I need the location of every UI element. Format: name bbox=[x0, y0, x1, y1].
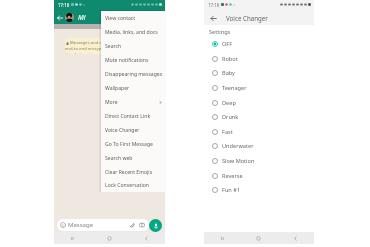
staticText: Reverse bbox=[222, 172, 243, 180]
staticText: Message bbox=[68, 221, 94, 229]
button[interactable]: Recent apps bbox=[204, 232, 240, 244]
button[interactable]: Reverse bbox=[204, 168, 314, 183]
button[interactable]: Home bbox=[240, 232, 277, 244]
staticText: Wallpaper bbox=[105, 85, 130, 92]
staticText: OFF bbox=[222, 40, 233, 48]
button[interactable]: Direct Contact Link bbox=[101, 109, 166, 123]
staticText: Direct Contact Link bbox=[105, 113, 151, 120]
staticText: 17:16 bbox=[208, 2, 220, 8]
button[interactable]: Drunk bbox=[204, 109, 314, 124]
staticText: Go To First Message bbox=[105, 141, 153, 148]
button[interactable]: Contact photo bbox=[65, 13, 74, 22]
staticText: 17:16 bbox=[58, 2, 70, 8]
button[interactable]: Wallpaper bbox=[101, 81, 166, 95]
staticText: Clear Recent Emojis bbox=[105, 169, 153, 176]
staticText: Deep bbox=[222, 99, 236, 107]
button[interactable]: View contact bbox=[101, 11, 166, 25]
button[interactable]: Disappearing messages bbox=[101, 67, 166, 81]
staticText: Settings bbox=[209, 28, 231, 36]
staticText: Drunk bbox=[222, 113, 239, 121]
staticText: Underwater bbox=[222, 142, 254, 150]
staticText: Messages and calls are bbox=[70, 40, 116, 46]
staticText: Fun #1 bbox=[222, 186, 241, 194]
button[interactable]: Voice Changer bbox=[101, 123, 166, 137]
staticText: Search bbox=[105, 43, 122, 50]
button[interactable]: Search web bbox=[101, 151, 166, 165]
staticText: Fast bbox=[222, 128, 233, 136]
button[interactable]: Recent apps bbox=[54, 232, 91, 244]
button[interactable]: Home bbox=[91, 232, 128, 244]
staticText: Lock Conversation bbox=[105, 182, 149, 189]
button[interactable]: Media, links, and docs bbox=[101, 25, 166, 39]
button[interactable]: Underwater bbox=[204, 138, 314, 153]
button[interactable]: Clear Recent Emojis bbox=[101, 165, 166, 179]
staticText: Robot bbox=[222, 55, 238, 63]
button[interactable]: Slow Motion bbox=[204, 153, 314, 168]
staticText: end-to-end encrypted. No one outside of bbox=[65, 46, 117, 52]
staticText: More bbox=[105, 99, 118, 106]
button[interactable]: Lock Conversation bbox=[101, 179, 166, 192]
button[interactable]: Fun #1 bbox=[204, 182, 314, 197]
staticText: this chat, not even WhatsApp, can read o… bbox=[65, 52, 117, 54]
button[interactable]: Back bbox=[55, 13, 64, 22]
button[interactable]: More bbox=[101, 95, 166, 109]
button[interactable]: Mute notifications bbox=[101, 53, 166, 67]
button[interactable]: Deep bbox=[204, 95, 314, 110]
staticText: Slow Motion bbox=[222, 157, 255, 165]
button[interactable]: Back bbox=[277, 232, 314, 244]
button[interactable]: Teenager bbox=[204, 80, 314, 95]
button[interactable]: Baby bbox=[204, 65, 314, 80]
staticText: Voice Changer bbox=[226, 14, 268, 22]
button[interactable]: Record voice message bbox=[149, 219, 162, 232]
button[interactable]: Back bbox=[206, 11, 220, 25]
button[interactable]: Search bbox=[101, 39, 166, 53]
staticText: View contact bbox=[105, 15, 136, 22]
staticText: Voice Changer bbox=[105, 127, 140, 134]
button[interactable]: Go To First Message bbox=[101, 137, 166, 151]
staticText: Media, links, and docs bbox=[105, 29, 158, 36]
button[interactable]: Robot bbox=[204, 51, 314, 66]
button[interactable]: Message bbox=[57, 219, 149, 231]
staticText: Disappearing messages bbox=[105, 71, 163, 78]
staticText: Teenager bbox=[222, 84, 247, 92]
staticText: Search web bbox=[105, 155, 133, 162]
button[interactable]: Fast bbox=[204, 124, 314, 139]
button[interactable]: OFF bbox=[204, 36, 314, 51]
button[interactable]: Back bbox=[128, 232, 165, 244]
staticText: Mi bbox=[78, 13, 86, 22]
staticText: Baby bbox=[222, 69, 235, 77]
staticText: Mute notifications bbox=[105, 57, 149, 64]
